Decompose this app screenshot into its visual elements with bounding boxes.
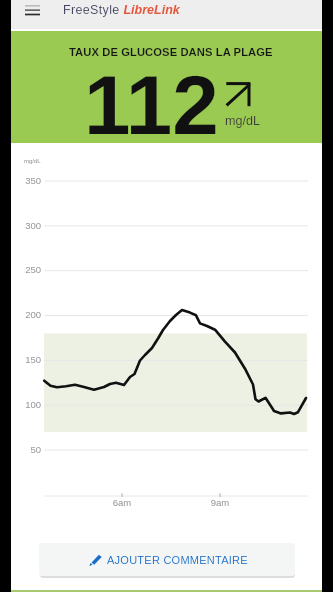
button[interactable]: Menu: [20, 0, 45, 21]
staticText: 200: [17, 309, 41, 320]
staticText: mg/dL: [24, 158, 41, 165]
staticText: 350: [17, 175, 41, 186]
staticText: 9am: [207, 497, 233, 508]
staticText: 112: [84, 58, 219, 151]
staticText: 6am: [109, 497, 135, 508]
staticText: mg/dL: [225, 114, 261, 128]
staticText: 250: [17, 264, 41, 275]
staticText: 50: [17, 444, 41, 455]
staticText: AJOUTER COMMENTAIRE: [107, 554, 248, 566]
staticText: 100: [17, 399, 41, 410]
staticText: TAUX DE GLUCOSE DANS LA PLAGE: [69, 46, 273, 59]
staticText: 150: [17, 354, 41, 365]
staticText: 300: [17, 220, 41, 231]
staticText: FreeStyle LibreLink: [63, 3, 180, 17]
button[interactable]: AJOUTER COMMENTAIRE: [39, 543, 295, 576]
